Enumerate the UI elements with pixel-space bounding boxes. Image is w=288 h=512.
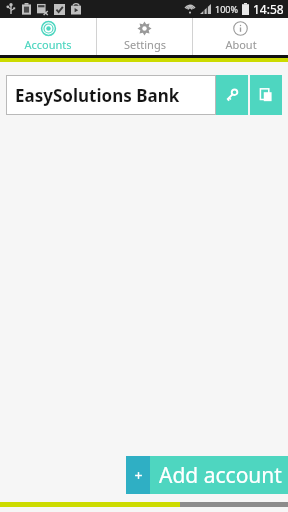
button[interactable]: Accounts — [0, 18, 96, 55]
staticText: 100% — [215, 3, 238, 15]
button[interactable]: EasySolutions Bank — [6, 75, 216, 115]
button[interactable]: About — [193, 18, 288, 55]
staticText: Add account — [159, 461, 282, 490]
staticText: 14:58 — [253, 1, 284, 17]
staticText: EasySolutions Bank — [15, 84, 180, 107]
button[interactable]: Add account — [126, 456, 288, 494]
button[interactable]: Copy to clipboard — [250, 75, 282, 115]
button[interactable]: Settings — [97, 18, 192, 55]
button[interactable]: Show password — [216, 75, 248, 115]
staticText: Accounts — [24, 37, 72, 52]
staticText: About — [225, 37, 257, 52]
staticText: Settings — [124, 37, 166, 52]
